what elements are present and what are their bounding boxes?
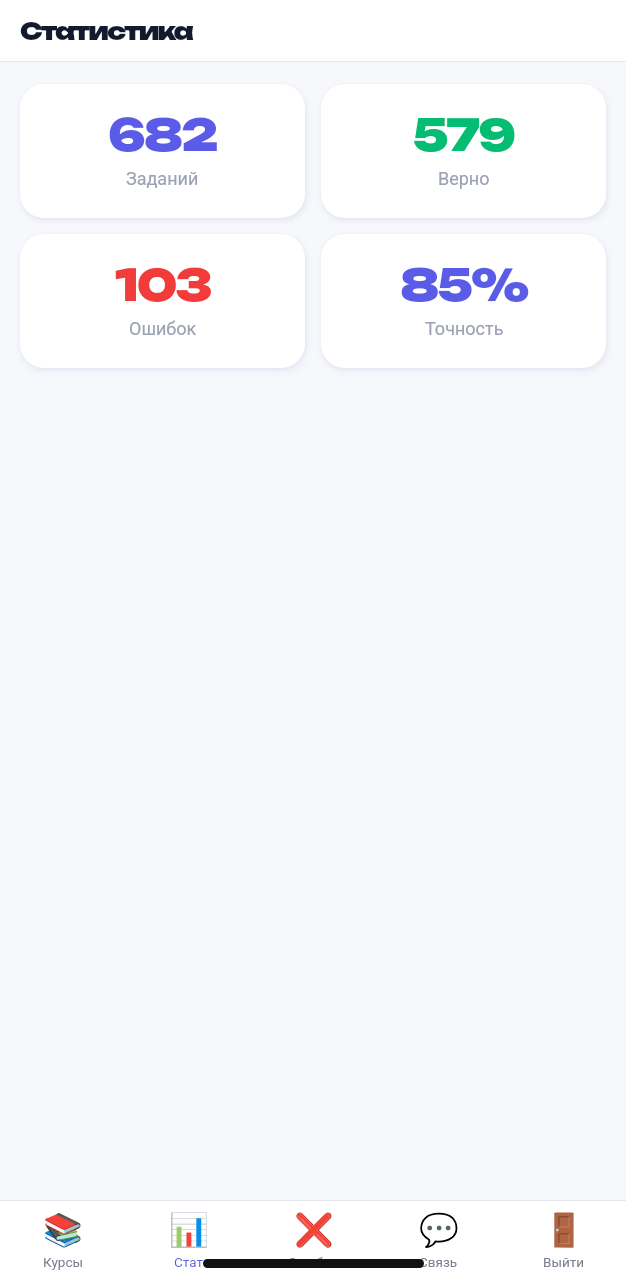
staticText: 103 xyxy=(115,258,211,311)
staticText: Курсы xyxy=(43,1254,83,1270)
staticText: 💬 xyxy=(419,1211,459,1249)
button[interactable]: Стат xyxy=(126,1201,251,1280)
staticText: 579 xyxy=(413,108,515,161)
staticText: Ошибок xyxy=(129,318,197,339)
staticText: ❌ xyxy=(294,1211,334,1249)
button[interactable]: 103 xyxy=(20,234,305,368)
button[interactable]: 85% xyxy=(321,234,606,368)
staticText: 📊 xyxy=(169,1211,209,1249)
staticText: Точность xyxy=(425,318,504,339)
staticText: Ошибки xyxy=(288,1254,339,1270)
staticText: 682 xyxy=(108,108,217,161)
staticText: Заданий xyxy=(126,168,199,189)
button[interactable]: Курсы xyxy=(0,1201,126,1280)
staticText: Верно xyxy=(438,168,490,189)
staticText: 🚪 xyxy=(544,1211,584,1249)
staticText: Выйти xyxy=(543,1254,584,1270)
button[interactable]: Связь xyxy=(376,1201,501,1280)
button[interactable]: 579 xyxy=(321,84,606,218)
staticText: 85% xyxy=(400,258,528,311)
staticText: Статистика xyxy=(20,16,193,46)
staticText: 📚 xyxy=(43,1211,83,1249)
staticText: Связь xyxy=(419,1254,458,1270)
button[interactable]: 682 xyxy=(20,84,305,218)
staticText: Стат xyxy=(174,1254,203,1270)
button[interactable]: Выйти xyxy=(501,1201,626,1280)
button[interactable]: Ошибки xyxy=(251,1201,376,1280)
